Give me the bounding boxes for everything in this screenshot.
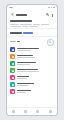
button[interactable]: [7, 74, 57, 81]
button[interactable]: Movies: [31, 108, 44, 115]
button[interactable]: [7, 29, 57, 36]
button[interactable]: Refresh: [46, 38, 54, 46]
button[interactable]: Games: [7, 108, 19, 115]
button[interactable]: [7, 81, 57, 88]
button[interactable]: [7, 53, 57, 60]
button[interactable]: Back: [10, 12, 15, 17]
button[interactable]: More options: [50, 13, 54, 17]
button[interactable]: Apps: [19, 108, 31, 115]
button[interactable]: [7, 67, 57, 74]
button[interactable]: [7, 88, 57, 95]
button[interactable]: [7, 46, 57, 53]
button[interactable]: Books: [44, 108, 57, 115]
button[interactable]: Search: [45, 12, 50, 17]
button[interactable]: [7, 60, 57, 67]
